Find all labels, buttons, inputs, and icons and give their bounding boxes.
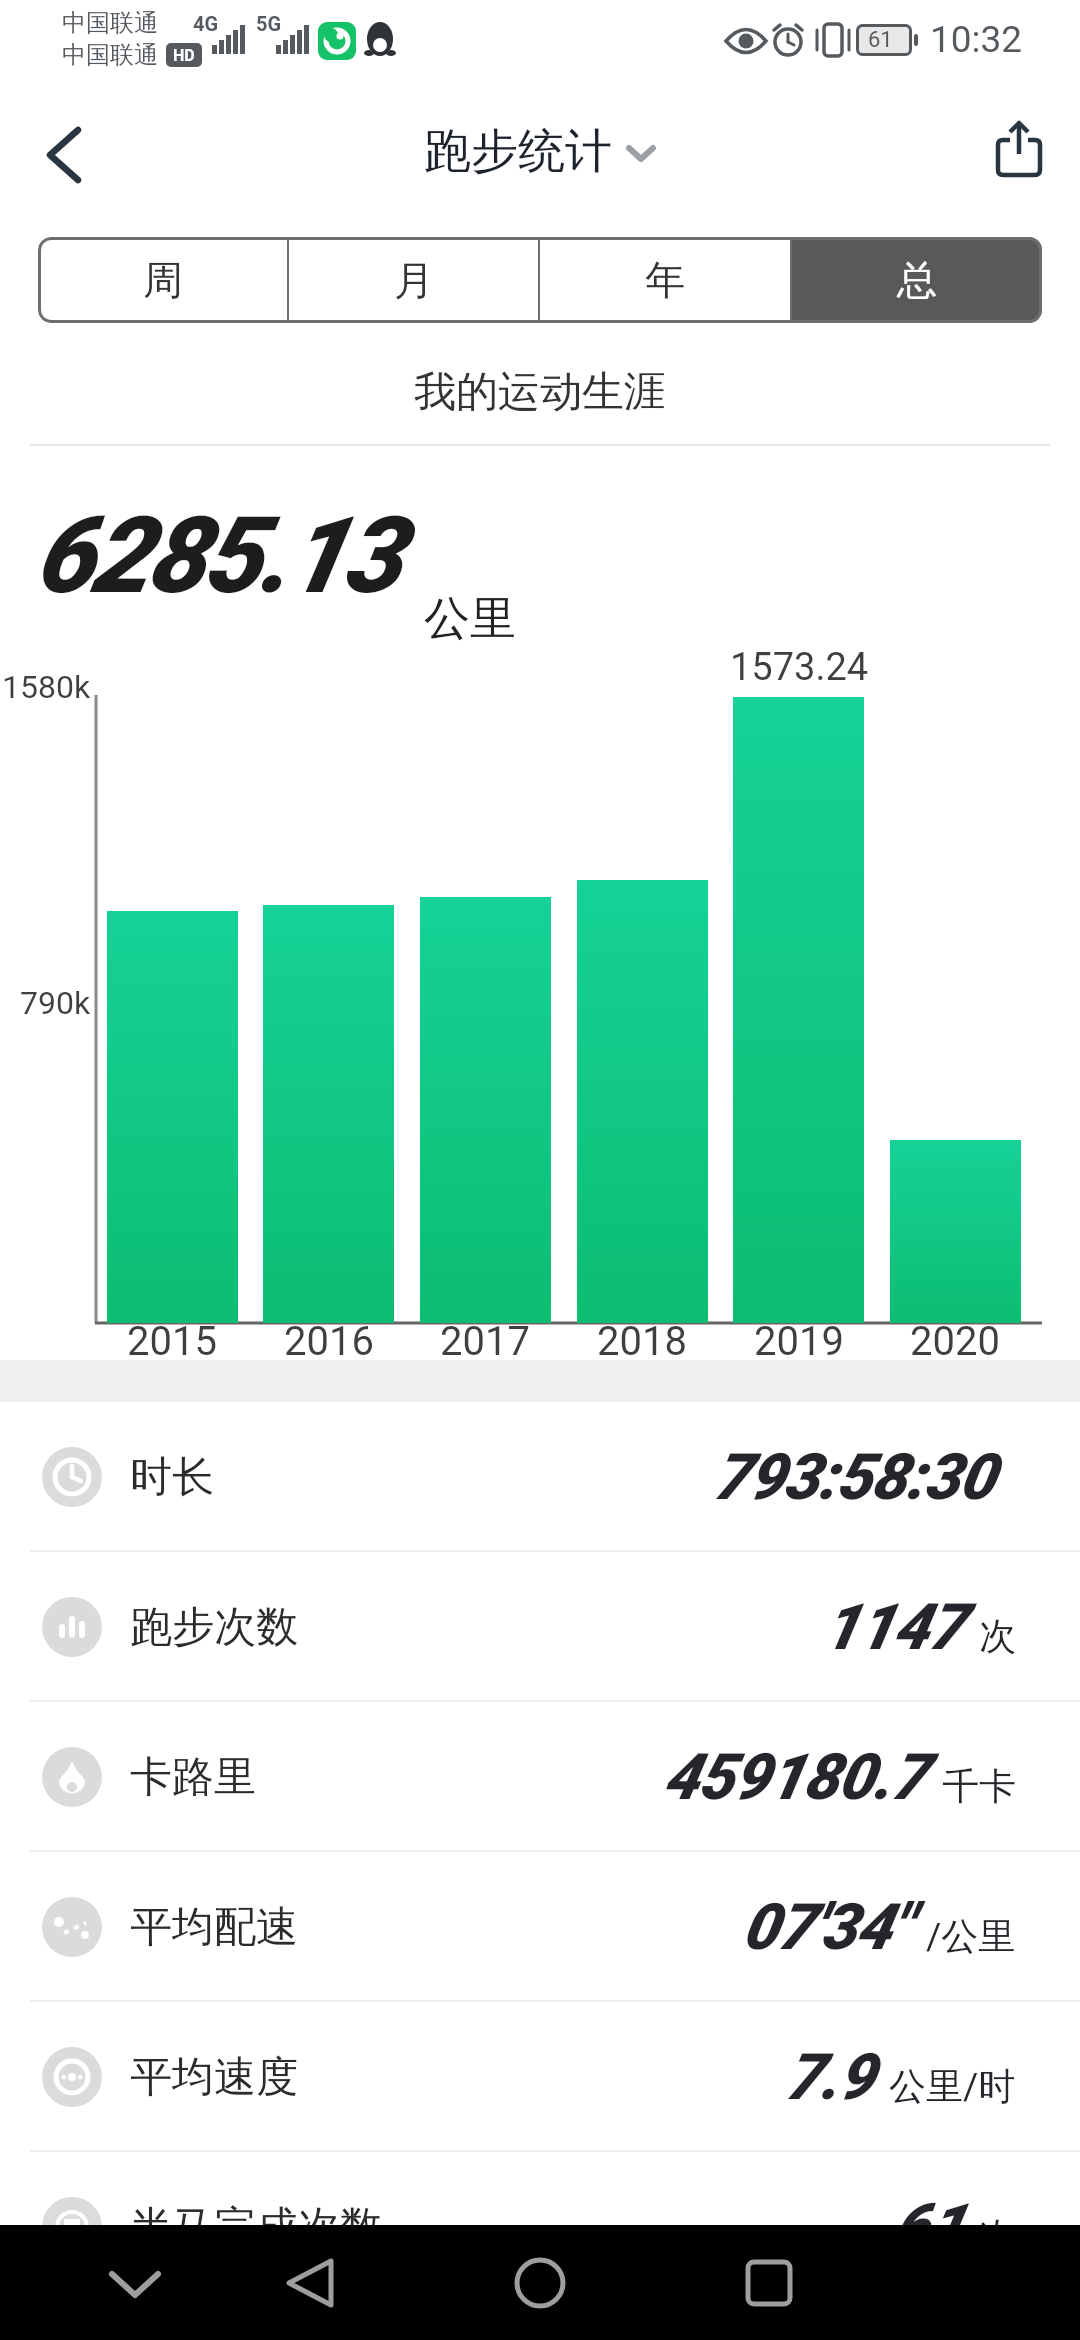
staticText: 我的运动生涯: [414, 366, 666, 419]
staticText: 2018: [597, 1318, 687, 1365]
staticText: 跑步统计: [424, 122, 612, 181]
staticText: 年: [645, 255, 685, 305]
button[interactable]: [28, 118, 100, 190]
staticText: 2017: [440, 1318, 530, 1365]
staticText: 4G: [193, 12, 219, 35]
staticText: 中国联通: [62, 8, 158, 38]
button[interactable]: 平均速度: [0, 2002, 1080, 2152]
staticText: 周: [143, 255, 183, 305]
button[interactable]: 周: [38, 237, 287, 323]
staticText: 2015: [127, 1318, 217, 1365]
staticText: 次: [979, 2213, 1016, 2260]
staticText: 61: [893, 2190, 963, 2265]
button[interactable]: 卡路里: [0, 1702, 1080, 1852]
button[interactable]: [275, 2248, 345, 2318]
staticText: 月: [394, 255, 434, 305]
staticText: 半马完成次数: [130, 2201, 382, 2254]
staticText: HD: [173, 46, 195, 65]
button[interactable]: 年: [540, 237, 790, 323]
staticText: 公里: [424, 590, 516, 648]
button[interactable]: [100, 2250, 170, 2320]
button[interactable]: [505, 2248, 575, 2318]
staticText: 1573.24: [730, 645, 869, 690]
staticText: 459180.7: [663, 1740, 926, 1815]
staticText: 10:32: [930, 18, 1023, 61]
staticText: 5G: [256, 12, 282, 35]
staticText: 中国联通: [62, 40, 158, 70]
button[interactable]: 跑步统计: [424, 122, 656, 181]
staticText: 2019: [754, 1318, 844, 1365]
staticText: /公里: [926, 1913, 1016, 1960]
staticText: 07'34": [742, 1890, 910, 1965]
staticText: 次: [979, 1613, 1016, 1660]
staticText: 平均速度: [130, 2051, 298, 2104]
button[interactable]: 月: [289, 237, 538, 323]
button[interactable]: 跑步次数: [0, 1552, 1080, 1702]
staticText: 时长: [130, 1451, 214, 1504]
button[interactable]: 总: [792, 237, 1042, 323]
staticText: 千卡: [942, 1763, 1016, 1810]
staticText: 平均配速: [130, 1901, 298, 1954]
staticText: 1147: [823, 1590, 963, 1665]
staticText: 790k: [20, 984, 91, 1022]
button[interactable]: [986, 118, 1054, 186]
staticText: 公里/时: [889, 2063, 1016, 2110]
staticText: 跑步次数: [130, 1601, 298, 1654]
staticText: 7.9: [785, 2040, 873, 2115]
button[interactable]: 平均配速: [0, 1852, 1080, 2002]
staticText: 6285.13: [34, 494, 399, 618]
button[interactable]: [734, 2248, 804, 2318]
button[interactable]: 时长: [0, 1402, 1080, 1552]
staticText: 61: [868, 27, 893, 53]
button[interactable]: 半马完成次数: [0, 2152, 1080, 2302]
staticText: 793:58:30: [713, 1440, 994, 1515]
staticText: 2020: [910, 1318, 1000, 1365]
staticText: 卡路里: [130, 1751, 256, 1804]
staticText: 总: [897, 255, 937, 305]
staticText: 2016: [284, 1318, 374, 1365]
staticText: 1580k: [2, 668, 91, 706]
